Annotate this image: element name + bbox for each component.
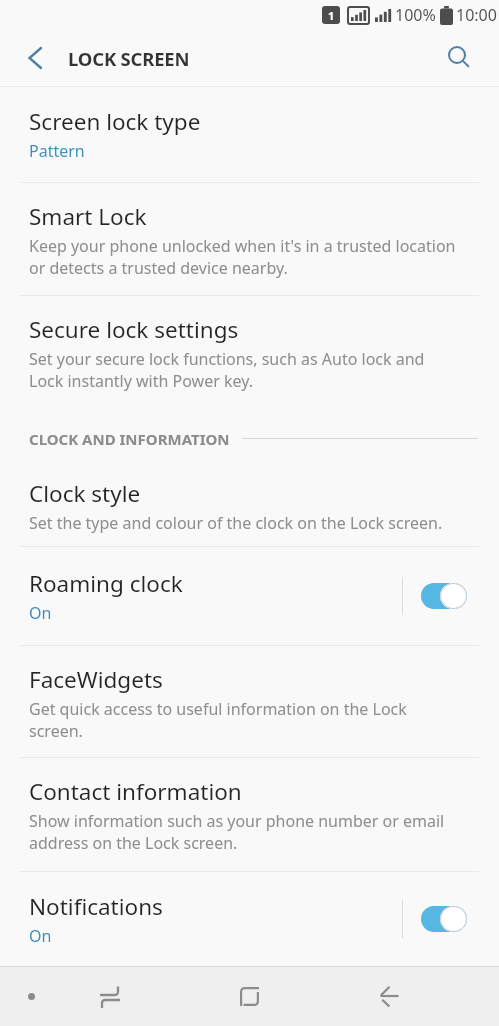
button[interactable]: Screen lock type [0,87,499,182]
staticText: Roaming clock [29,568,183,599]
button[interactable] [3,967,59,1026]
button[interactable] [82,967,138,1026]
button[interactable] [421,906,467,932]
staticText: Notifications [29,891,163,922]
staticText: Pattern [29,140,85,162]
button[interactable]: Secure lock settings [0,296,499,406]
staticText: Secure lock settings [29,314,239,345]
button[interactable]: Roaming clock [0,547,499,645]
staticText: Set your secure lock functions, such as … [29,348,425,392]
button[interactable] [221,967,277,1026]
button[interactable] [12,35,58,81]
button[interactable]: FaceWidgets [0,646,499,757]
button[interactable] [437,36,481,80]
staticText: On [29,602,52,624]
staticText: 1 [328,8,335,23]
button[interactable]: Notifications [0,872,499,966]
staticText: FaceWidgets [29,664,163,695]
staticText: LOCK SCREEN [68,46,190,71]
staticText: Screen lock type [29,106,201,137]
button[interactable]: Contact information [0,758,499,871]
staticText: Contact information [29,776,242,807]
staticText: Show information such as your phone numb… [29,810,445,854]
staticText: 100% [395,4,436,26]
staticText: Keep your phone unlocked when it's in a … [29,235,456,279]
staticText: Set the type and colour of the clock on … [29,512,443,534]
staticText: Get quick access to useful information o… [29,698,407,742]
staticText: Clock style [29,478,141,509]
button[interactable]: Clock style [0,462,499,546]
staticText: CLOCK AND INFORMATION [29,429,230,449]
button[interactable] [421,583,467,609]
staticText: On [29,925,52,947]
staticText: 10:00 [456,4,497,26]
staticText: Smart Lock [29,201,147,232]
button[interactable] [361,967,417,1026]
button[interactable]: Smart Lock [0,183,499,295]
